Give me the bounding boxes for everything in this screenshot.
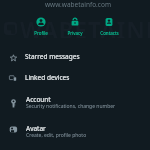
button[interactable]: Privacy bbox=[58, 16, 92, 36]
button[interactable]: Starred messages bbox=[0, 46, 150, 67]
button[interactable]: Contacts bbox=[92, 16, 126, 36]
staticText: www.wabetainfo.com bbox=[45, 0, 111, 9]
staticText: Account bbox=[26, 95, 51, 104]
staticText: Linked devices bbox=[25, 73, 70, 82]
staticText: Avatar bbox=[26, 124, 46, 133]
staticText: Starred messages bbox=[25, 52, 80, 61]
staticText: Privacy bbox=[67, 30, 83, 36]
button[interactable]: Linked devices bbox=[0, 67, 150, 88]
staticText: Security notifications, change number bbox=[26, 103, 116, 110]
button[interactable]: Avatar bbox=[0, 117, 150, 146]
button[interactable]: Account bbox=[0, 88, 150, 117]
staticText: Contacts bbox=[100, 30, 119, 36]
staticText: Profile bbox=[34, 30, 48, 36]
staticText: Create, edit, profile photo bbox=[26, 132, 87, 139]
button[interactable]: Profile bbox=[24, 16, 58, 36]
staticText: WABETAINFO bbox=[20, 14, 150, 38]
